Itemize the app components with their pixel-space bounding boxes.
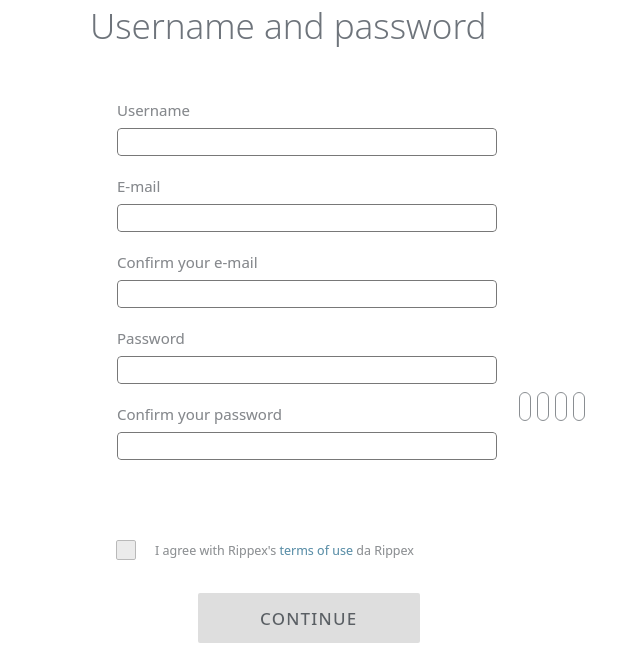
other: I agree with terms of use [116,540,136,560]
button[interactable] [117,280,497,308]
staticText: Username [117,100,190,120]
staticText: I agree with Rippex's terms of use da Ri… [155,542,414,559]
staticText: E-mail [117,176,161,196]
staticText: CONTINUE [260,607,358,630]
staticText: Password [117,328,185,348]
button[interactable]: I agree with terms of use [116,540,414,560]
button[interactable] [117,128,497,156]
button[interactable]: CONTINUE [198,593,420,643]
button[interactable] [117,356,497,384]
staticText: Username and password [90,2,487,50]
staticText: Confirm your password [117,404,283,424]
button[interactable] [117,432,497,460]
button[interactable] [117,204,497,232]
staticText: Confirm your e-mail [117,252,258,272]
